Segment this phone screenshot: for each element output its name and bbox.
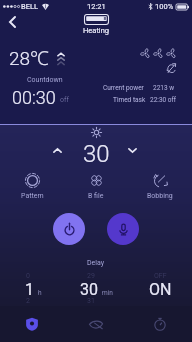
staticText: 31 bbox=[87, 297, 95, 305]
button[interactable]: Bobbing bbox=[128, 171, 192, 202]
staticText: Current power bbox=[103, 84, 144, 92]
button[interactable]: 29 bbox=[66, 270, 126, 305]
staticText: h bbox=[38, 289, 42, 297]
staticText: OFF bbox=[154, 272, 167, 280]
button[interactable]: Decrease bbox=[123, 141, 141, 159]
button[interactable]: Timer bbox=[128, 305, 192, 342]
staticText: 100% bbox=[155, 2, 174, 11]
staticText: BELL bbox=[21, 2, 39, 11]
button[interactable]: Power bbox=[53, 213, 85, 245]
button[interactable]: Fan speed bbox=[152, 47, 165, 60]
staticText: Delay bbox=[87, 259, 105, 267]
button[interactable]: Increase bbox=[48, 141, 66, 159]
staticText: 12:21 bbox=[87, 2, 106, 11]
button[interactable]: Swing bbox=[165, 61, 178, 74]
button[interactable]: Pattern bbox=[0, 171, 64, 202]
staticText: 28℃ bbox=[9, 45, 49, 71]
button[interactable]: B file bbox=[64, 171, 128, 202]
staticText: ON bbox=[149, 280, 172, 299]
staticText: 2 bbox=[26, 297, 30, 305]
staticText: Bobbing bbox=[147, 192, 173, 200]
button[interactable]: Eco bbox=[64, 305, 128, 342]
staticText: 00:30 bbox=[12, 87, 56, 108]
button[interactable]: Security bbox=[0, 305, 64, 342]
button[interactable]: Back bbox=[2, 12, 22, 32]
staticText: min bbox=[102, 289, 113, 297]
staticText: Timed task bbox=[113, 96, 146, 104]
button[interactable]: OFF bbox=[130, 270, 190, 305]
staticText: off bbox=[60, 96, 69, 104]
staticText: 30 bbox=[80, 280, 98, 299]
staticText: 1 bbox=[25, 280, 34, 299]
staticText: B file bbox=[88, 192, 104, 200]
staticText: 29 bbox=[87, 272, 95, 280]
staticText: 2213 w bbox=[153, 84, 175, 92]
button[interactable]: 0 bbox=[3, 270, 63, 305]
staticText: Heating bbox=[83, 26, 110, 35]
staticText: Countdown bbox=[27, 76, 63, 84]
button[interactable]: Fan speed bbox=[139, 47, 152, 60]
staticText: 30 bbox=[83, 140, 110, 168]
button[interactable]: Fan speed bbox=[165, 47, 178, 60]
button[interactable]: Voice bbox=[107, 213, 139, 245]
staticText: 0 bbox=[26, 272, 30, 280]
staticText: Pattern bbox=[21, 192, 44, 200]
staticText: 22:30 off bbox=[150, 96, 177, 104]
